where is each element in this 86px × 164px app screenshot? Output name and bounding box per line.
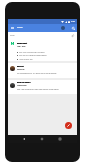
staticText: Medium Digest xyxy=(17,43,28,45)
staticText: I Took a Gift a Day xyxy=(19,58,33,60)
staticText: Bang Yap xyxy=(17,66,24,68)
staticText: Dinner on Sunday? xyxy=(17,82,31,84)
button[interactable]: Bang Yap xyxy=(8,63,77,78)
staticText: I'm thinking about it. It's about the ca… xyxy=(17,72,57,74)
staticText: Lombard Street xyxy=(17,85,27,87)
staticText: Lombard Street xyxy=(17,85,27,87)
staticText: Missed Calls xyxy=(17,69,25,71)
staticText: Latest · Today xyxy=(17,46,26,48)
staticText: Missed Calls xyxy=(17,69,25,71)
button[interactable]: Compose xyxy=(65,122,72,129)
staticText: Dinner on Sunday? xyxy=(17,82,31,84)
staticText: Bang Yap xyxy=(17,66,24,68)
button[interactable]: Medium Digest xyxy=(8,38,77,61)
button[interactable]: Menu xyxy=(9,24,15,32)
staticText: Dinner on Sunday? xyxy=(17,82,31,84)
staticText: Inbox xyxy=(17,26,23,29)
button[interactable]: Recents xyxy=(57,135,63,143)
staticText: Why Your Cynicism Feels The Dark xyxy=(19,51,45,53)
staticText: Medium Digest xyxy=(17,43,28,45)
button[interactable]: Back xyxy=(21,135,27,143)
staticText: Medium Digest xyxy=(17,43,28,45)
staticText: Latest · Today xyxy=(17,46,26,48)
staticText: 4:20 xyxy=(71,20,75,23)
staticText: Hey! I was thinking we could meet up wit… xyxy=(17,88,60,90)
staticText: Why Our UX Platforms Keep Slipping xyxy=(19,54,47,56)
button[interactable]: Home xyxy=(39,135,45,143)
button[interactable]: Dinner on Sunday? xyxy=(8,80,77,94)
button[interactable]: Search xyxy=(70,24,76,32)
button[interactable]: Account xyxy=(61,26,65,30)
staticText: Bang Yap xyxy=(17,66,24,68)
staticText: Today xyxy=(10,34,15,36)
